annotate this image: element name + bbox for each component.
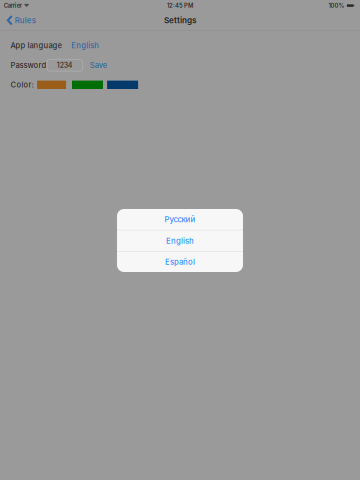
button[interactable]: English — [71, 41, 99, 50]
staticText: Русский — [164, 215, 195, 224]
staticText: 1234 — [57, 61, 73, 69]
button[interactable]: Rules — [0, 10, 41, 31]
staticText: Password — [10, 61, 46, 70]
staticText: Carrier — [4, 2, 22, 9]
button[interactable]: English — [117, 230, 243, 251]
button[interactable]: Español — [117, 252, 243, 272]
button[interactable]: Save — [90, 61, 107, 70]
staticText: English — [166, 236, 194, 246]
staticText: Español — [165, 257, 195, 267]
staticText: Settings — [164, 15, 196, 25]
staticText: 100% — [329, 2, 345, 9]
staticText: 12:45 PM — [167, 2, 193, 9]
staticText: Rules — [15, 15, 36, 25]
button[interactable]: Русский — [117, 209, 243, 230]
staticText: English — [71, 41, 99, 50]
staticText: Color: — [10, 80, 33, 89]
staticText: Save — [90, 61, 107, 70]
staticText: App language — [10, 41, 61, 50]
